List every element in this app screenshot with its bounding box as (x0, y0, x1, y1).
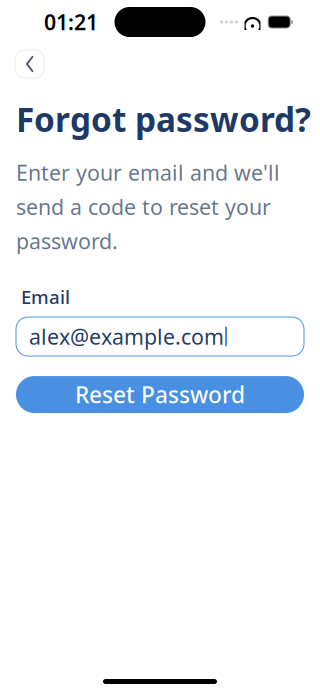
staticText: Email (21, 284, 70, 309)
button[interactable]: Reset Password (16, 376, 304, 413)
button[interactable]: alex@example.com (16, 317, 304, 356)
staticText: alex@example.com (29, 322, 224, 351)
staticText: 01:21 (44, 8, 98, 36)
staticText: Forgot password? (16, 97, 311, 141)
staticText: Reset Password (75, 379, 245, 410)
staticText: Enter your email and we'll send a code t… (16, 158, 280, 255)
button[interactable]: Back (15, 50, 44, 78)
